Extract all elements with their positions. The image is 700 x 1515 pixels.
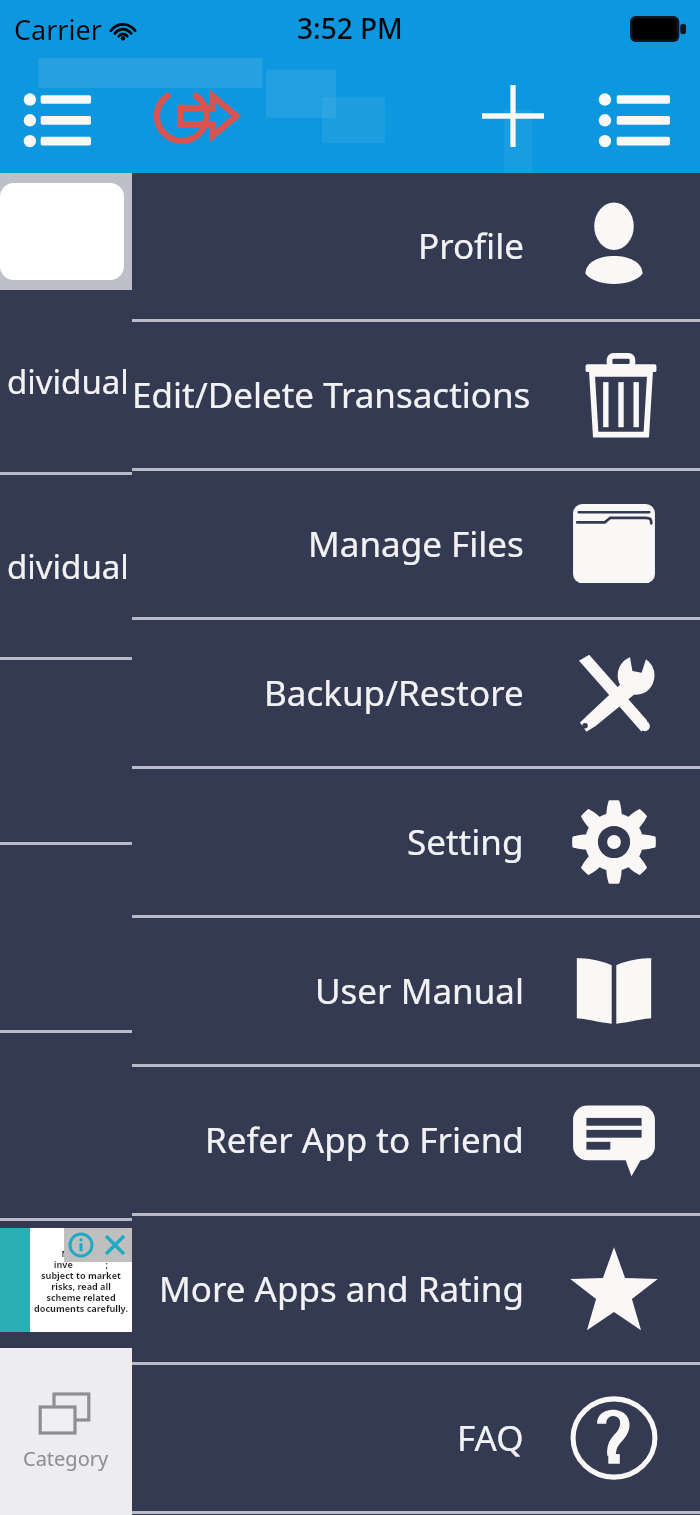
staticText: Profile [418, 222, 524, 270]
staticText: dividual [7, 359, 129, 404]
button[interactable]: Logout [148, 76, 244, 156]
staticText: dividual [7, 544, 129, 589]
staticText: More Apps and Rating [159, 1265, 524, 1313]
staticText: User Manual [315, 967, 524, 1015]
staticText: FAQ [457, 1414, 524, 1462]
button[interactable]: FAQ [132, 1365, 700, 1511]
staticText: Refer App to Friend [205, 1116, 524, 1164]
staticText: Setting [407, 818, 524, 866]
button[interactable]: More Apps and Rating [132, 1216, 700, 1362]
staticText: 3:52 PM [297, 9, 403, 47]
button[interactable]: User Manual [132, 918, 700, 1064]
button[interactable]: List [586, 76, 682, 156]
staticText: Category [23, 1445, 109, 1472]
button[interactable]: Close ad [98, 1228, 132, 1262]
button[interactable]: Backup/Restore [132, 620, 700, 766]
button[interactable]: Refer App to Friend [132, 1067, 700, 1213]
staticText: Backup/Restore [264, 669, 524, 717]
button[interactable]: Edit/Delete Transactions [132, 322, 700, 468]
button[interactable]: Setting [132, 769, 700, 915]
staticText: M : inve ; subject to market risks, read… [34, 1247, 128, 1314]
button[interactable]: Manage Files [132, 471, 700, 617]
button[interactable]: Add [470, 73, 556, 159]
button[interactable]: Profile [132, 173, 700, 319]
staticText: Manage Files [308, 520, 524, 568]
staticText: Carrier [14, 11, 102, 48]
button[interactable]: Category [0, 1348, 132, 1515]
button[interactable] [0, 183, 124, 280]
staticText: Edit/Delete Transactions [132, 371, 531, 419]
button[interactable]: Menu [14, 76, 100, 156]
